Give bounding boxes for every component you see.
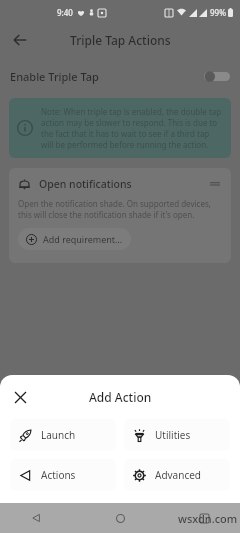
staticText: 99%	[210, 7, 226, 18]
button[interactable]: Home	[110, 508, 130, 528]
button[interactable]: Advanced	[124, 459, 230, 491]
staticText: Enable Triple Tap	[10, 69, 99, 84]
button[interactable]: Close	[10, 387, 30, 407]
staticText: Launch	[41, 428, 76, 442]
button[interactable]: Enable Triple Tap	[0, 62, 240, 90]
staticText: wsxdn.com	[178, 511, 238, 526]
staticText: Advanced	[155, 468, 201, 482]
button[interactable]: Launch	[10, 419, 116, 451]
button[interactable]: Recents	[194, 508, 214, 528]
staticText: Add Action	[89, 389, 152, 405]
staticText: Note: When triple tap is enabled, the do…	[41, 106, 223, 150]
button[interactable]: Reorder	[208, 177, 222, 191]
button[interactable]: Back	[26, 508, 46, 528]
button[interactable]: Utilities	[124, 419, 230, 451]
staticText: 9:40	[57, 7, 73, 18]
staticText: Add requirement…	[43, 233, 123, 245]
staticText: Actions	[41, 468, 76, 482]
button[interactable]: Actions	[10, 459, 116, 491]
staticText: Triple Tap Actions	[70, 32, 171, 48]
button[interactable]: Back	[8, 28, 32, 52]
staticText: Open notifications	[39, 177, 132, 191]
staticText: Open the notification shade. On supporte…	[18, 198, 222, 220]
button[interactable]: Open notifications	[9, 168, 231, 263]
button[interactable]: Add requirement…	[18, 228, 131, 250]
staticText: Utilities	[155, 428, 191, 442]
